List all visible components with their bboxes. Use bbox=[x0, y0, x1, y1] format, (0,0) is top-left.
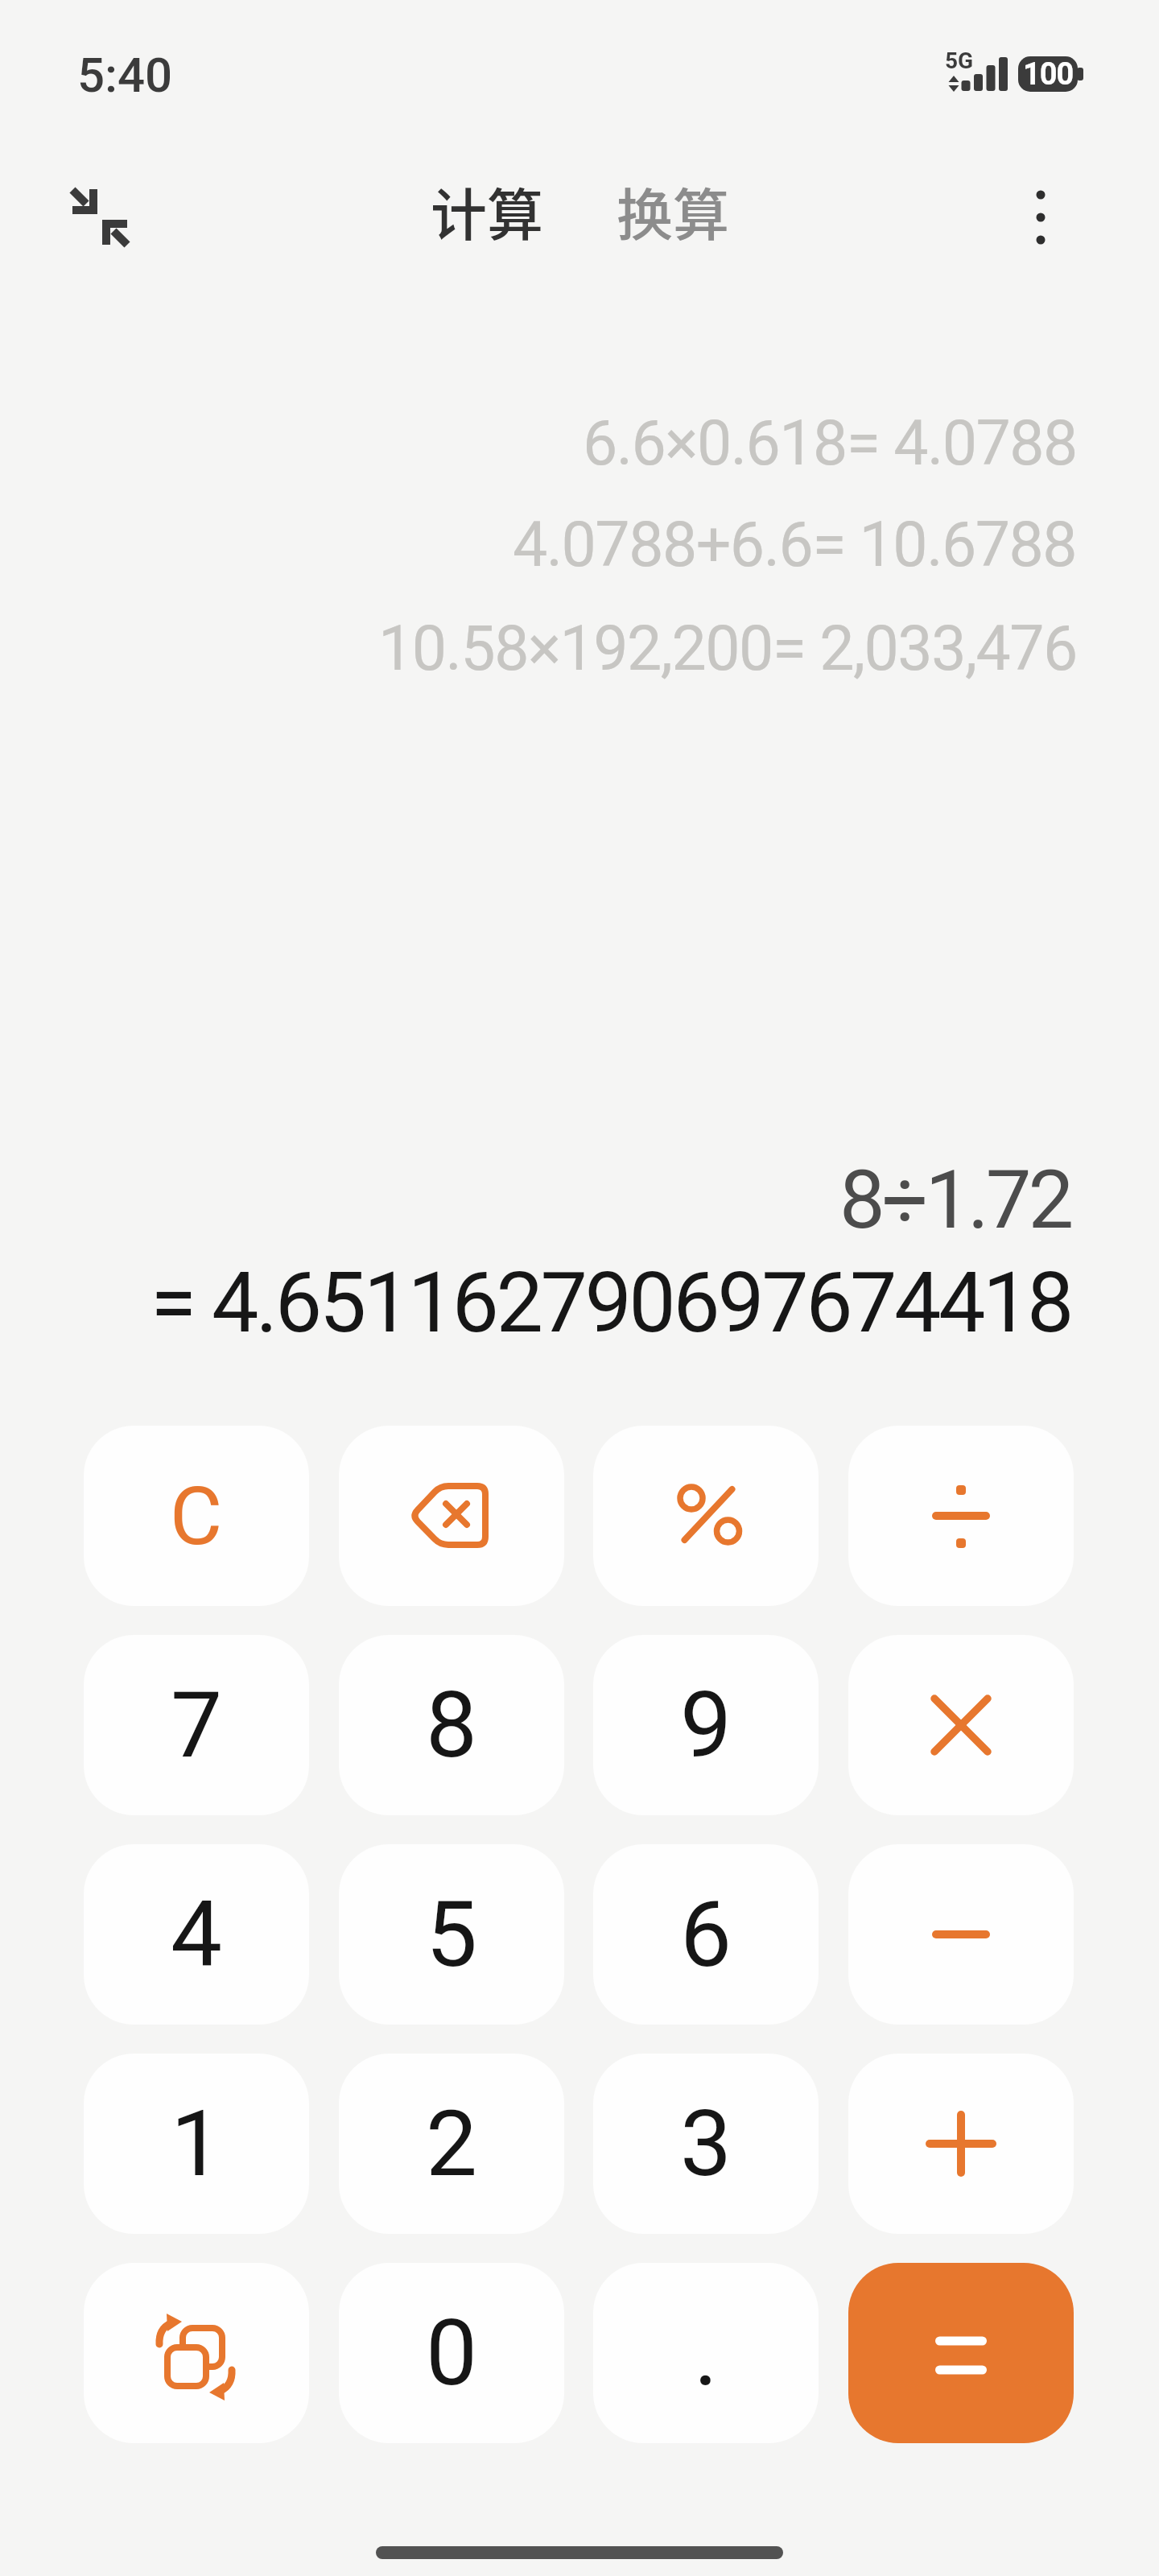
staticText: 8÷1.72 bbox=[839, 1152, 1071, 1247]
button[interactable]: 8 bbox=[339, 1635, 564, 1815]
staticText: 100 bbox=[1023, 56, 1074, 93]
button[interactable] bbox=[1006, 181, 1079, 254]
button[interactable]: 3 bbox=[593, 2054, 819, 2234]
staticText: 6 bbox=[680, 1880, 732, 1988]
staticText: 计算 bbox=[431, 171, 543, 251]
staticText: 4.0788+6.6= 10.6788 bbox=[513, 509, 1077, 581]
staticText: 4 bbox=[171, 1880, 223, 1988]
staticText: 2 bbox=[426, 2090, 478, 2198]
staticText: = 4.651162790697674418 bbox=[151, 1254, 1071, 1352]
button[interactable]: 9 bbox=[593, 1635, 819, 1815]
button[interactable]: 0 bbox=[339, 2263, 564, 2443]
button[interactable]: 2 bbox=[339, 2054, 564, 2234]
button[interactable] bbox=[593, 1426, 819, 1606]
staticText: 10.58×192,200= 2,033,476 bbox=[378, 613, 1077, 685]
staticText: 0 bbox=[426, 2299, 478, 2407]
button[interactable]: C bbox=[84, 1426, 309, 1606]
staticText: 换算 bbox=[617, 171, 729, 251]
button[interactable] bbox=[848, 1426, 1074, 1606]
staticText: 7 bbox=[171, 1671, 223, 1779]
staticText: . bbox=[694, 2299, 719, 2407]
staticText: 6.6×0.618= 4.0788 bbox=[583, 407, 1077, 480]
staticText: C bbox=[170, 1469, 223, 1563]
button[interactable] bbox=[84, 2263, 309, 2443]
button[interactable]: 6 bbox=[593, 1844, 819, 2025]
staticText: 8 bbox=[426, 1671, 478, 1779]
button[interactable]: 换算 bbox=[602, 171, 743, 251]
button[interactable]: 1 bbox=[84, 2054, 309, 2234]
staticText: 5G bbox=[945, 47, 974, 74]
button[interactable]: . bbox=[593, 2263, 819, 2443]
button[interactable]: 5 bbox=[339, 1844, 564, 2025]
staticText: 1 bbox=[171, 2090, 223, 2198]
button[interactable] bbox=[848, 2263, 1074, 2443]
button[interactable]: 4 bbox=[84, 1844, 309, 2025]
staticText: 3 bbox=[680, 2090, 732, 2198]
button[interactable] bbox=[339, 1426, 564, 1606]
button[interactable] bbox=[56, 177, 141, 258]
button[interactable] bbox=[848, 2054, 1074, 2234]
button[interactable] bbox=[848, 1635, 1074, 1815]
staticText: 5:40 bbox=[77, 47, 173, 103]
button[interactable]: 计算 bbox=[416, 171, 557, 251]
staticText: 5 bbox=[426, 1880, 478, 1988]
button[interactable]: 7 bbox=[84, 1635, 309, 1815]
staticText: 9 bbox=[680, 1671, 732, 1779]
button[interactable] bbox=[848, 1844, 1074, 2025]
